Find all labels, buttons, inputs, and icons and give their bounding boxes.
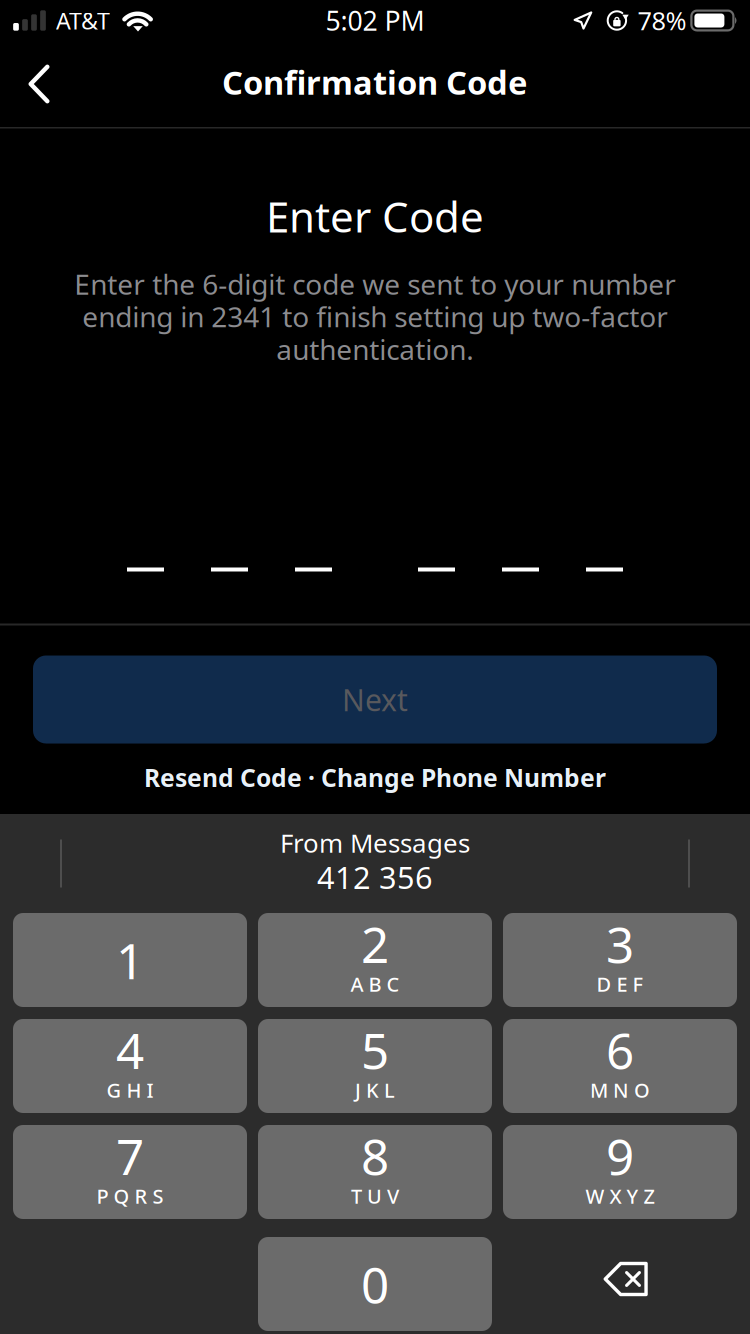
button[interactable]: 2 xyxy=(258,913,492,1007)
staticText: Next xyxy=(342,679,408,720)
button[interactable]: From Messages xyxy=(175,823,575,903)
button[interactable]: 6 xyxy=(503,1019,737,1113)
staticText: G H I xyxy=(106,1076,153,1104)
staticText: M N O xyxy=(590,1076,650,1104)
staticText: 2 xyxy=(361,910,389,977)
staticText: Enter the 6-digit code we sent to your n… xyxy=(74,265,676,368)
button[interactable]: Back xyxy=(7,51,71,117)
staticText: 8 xyxy=(361,1122,389,1189)
staticText: 0 xyxy=(361,1250,389,1318)
staticText: 7 xyxy=(116,1122,144,1189)
staticText: 78% xyxy=(637,3,686,38)
staticText: J K L xyxy=(355,1076,395,1104)
staticText: 6 xyxy=(606,1016,634,1083)
button[interactable]: Resend Code · Change Phone Number xyxy=(144,755,606,799)
button[interactable]: 5 xyxy=(258,1019,492,1113)
staticText: W X Y Z xyxy=(585,1182,654,1210)
staticText: T U V xyxy=(351,1182,399,1210)
button[interactable]: 9 xyxy=(503,1125,737,1219)
button[interactable]: 3 xyxy=(503,913,737,1007)
staticText: 9 xyxy=(606,1122,634,1189)
staticText: A B C xyxy=(350,970,399,998)
staticText: AT&T xyxy=(56,5,110,36)
staticText: 1 xyxy=(116,926,144,994)
staticText: Resend Code · Change Phone Number xyxy=(144,761,606,794)
button[interactable]: 0 xyxy=(258,1237,492,1331)
button[interactable]: Delete xyxy=(503,1237,737,1331)
staticText: 5 xyxy=(361,1016,389,1083)
staticText: Confirmation Code xyxy=(222,60,528,104)
staticText: 3 xyxy=(606,910,634,977)
staticText: 412 356 xyxy=(317,856,433,898)
staticText: P Q R S xyxy=(96,1182,163,1210)
staticText: 5:02 PM xyxy=(325,2,424,39)
button[interactable]: 1 xyxy=(13,913,247,1007)
button[interactable]: 4 xyxy=(13,1019,247,1113)
staticText: D E F xyxy=(596,970,643,998)
button[interactable]: 7 xyxy=(13,1125,247,1219)
staticText: 4 xyxy=(116,1016,144,1083)
staticText: Enter Code xyxy=(266,187,484,245)
staticText: From Messages xyxy=(280,825,470,860)
button[interactable]: 8 xyxy=(258,1125,492,1219)
button[interactable]: Next xyxy=(33,655,717,743)
